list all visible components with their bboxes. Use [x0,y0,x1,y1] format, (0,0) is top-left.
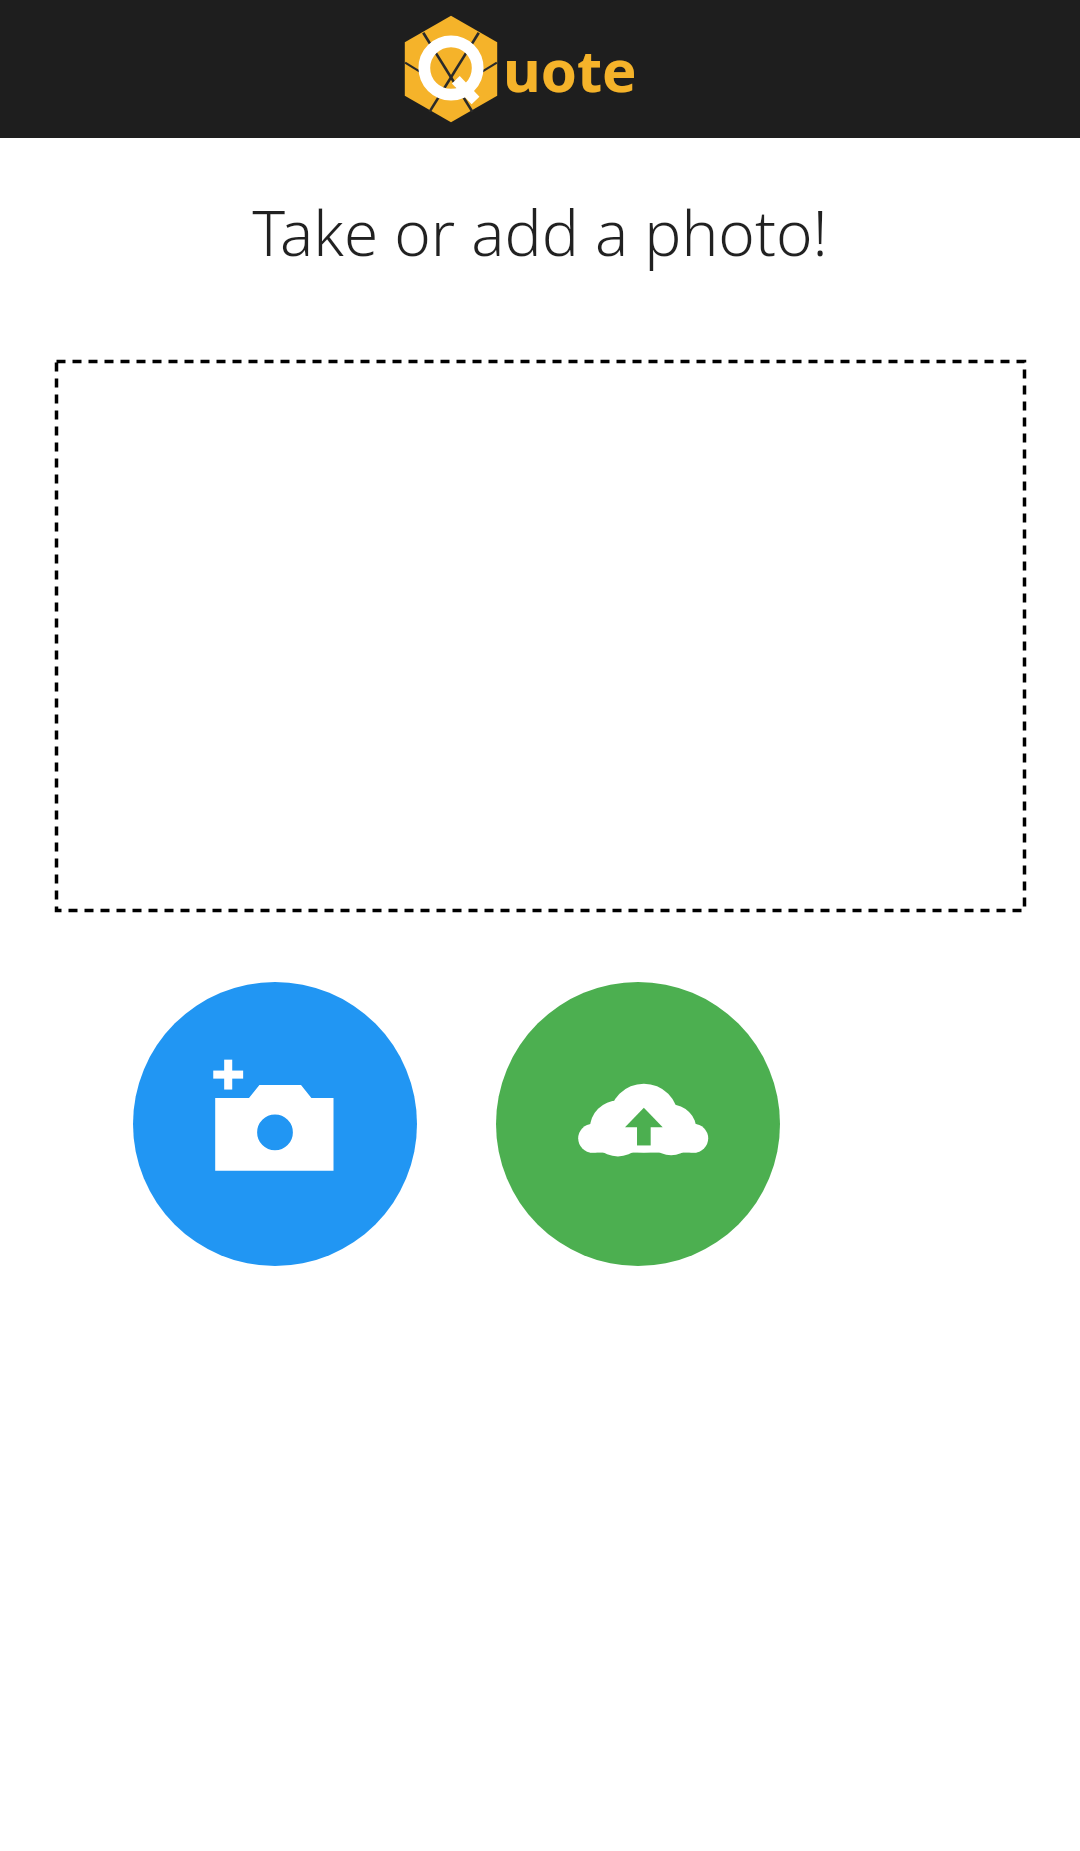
button[interactable]: Upload photo [496,982,780,1266]
staticText: uote [503,30,637,109]
button[interactable]: Quote [395,14,685,124]
staticText: Take or add a photo! [0,190,1080,274]
button[interactable]: Photo preview area [55,360,1026,912]
button[interactable]: Take a photo [133,982,417,1266]
